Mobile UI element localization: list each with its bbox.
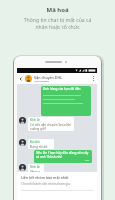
staticText: Liên kết nhóm bảo mật nhất [21,175,69,180]
staticText: Có việc vận chuyển Seoul thì xuống giờ? [30,123,72,131]
staticText: Vâng ạ [30,170,40,172]
staticText: Nếu lần f bạn hãy dẫn dùng nên cấy và an… [36,151,89,159]
button[interactable]: Nếu lần f bạn hãy dẫn dùng nên cấy và an… [34,150,92,163]
button[interactable]: Mai Anh [28,139,54,149]
staticText: Thông tin chat bị mất của cá nhân hoặc t… [17,17,98,30]
staticText: Đúng rồi đó anh [30,145,52,149]
button[interactable]: Minh An [28,117,74,131]
staticText: Vận chuyển DHL [34,75,63,80]
button[interactable]: More options [90,73,97,84]
staticText: Mai Anh [30,140,41,144]
staticText: Minh An [30,165,41,169]
staticText: Minh An [30,118,41,122]
button[interactable]: Minh An [28,164,44,172]
button[interactable]: Back [17,73,25,84]
staticText: Mã hoá [46,6,69,14]
staticText: Chỉ mới thành viên nhóm tham gia [21,182,70,186]
staticText: Đơn hàng của bạn đã đến [43,87,81,91]
staticText: 6:47 [85,159,90,162]
button[interactable]: Đơn hàng của bạn đã đến [41,86,91,116]
